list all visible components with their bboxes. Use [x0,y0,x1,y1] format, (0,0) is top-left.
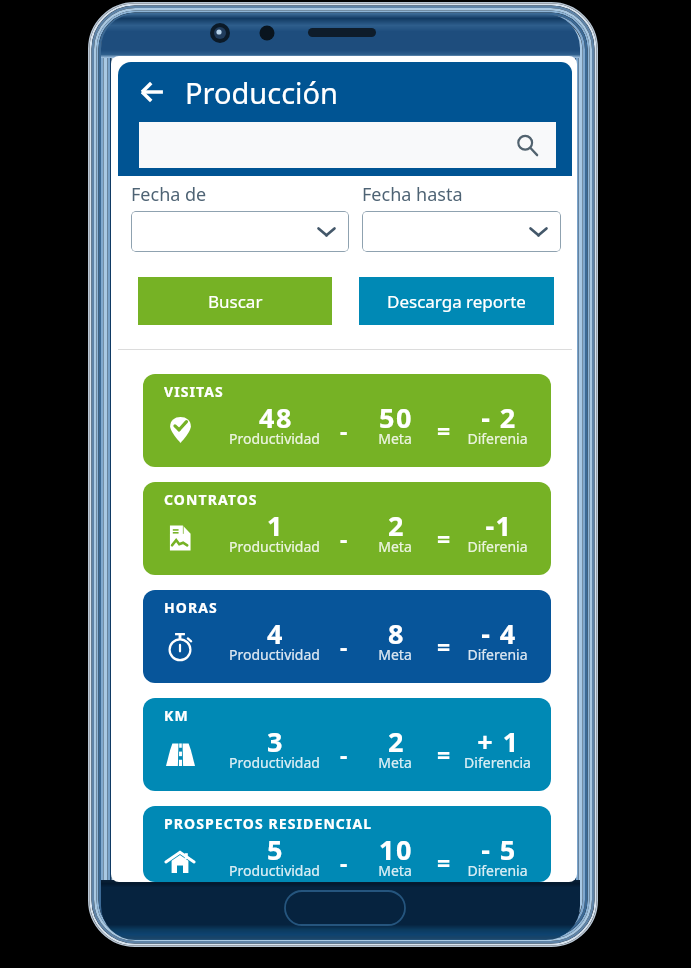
staticText: Productividad [229,429,320,448]
button[interactable]: Fecha hasta [362,211,561,252]
button[interactable]: Descarga reporte [359,277,554,325]
staticText: Diferenia [467,537,528,556]
staticText: = [437,631,451,662]
button[interactable]: Buscar [138,277,332,325]
button[interactable]: Fecha de [131,211,349,252]
staticText: Meta [378,429,412,448]
staticText: -1 [485,507,513,544]
staticText: = [437,523,451,554]
button[interactable]: Search field [139,122,556,168]
staticText: Productividad [229,537,320,556]
staticText: Meta [378,537,412,556]
staticText: 1 [267,507,284,544]
staticText: 2 [388,507,405,544]
staticText: Fecha de [131,182,207,207]
staticText: Productividad [229,861,320,880]
staticText: 48 [259,399,293,436]
button[interactable]: PROSPECTOS RESIDENCIAL [143,806,551,882]
staticText: - 2 [481,399,517,436]
staticText: + 1 [477,723,520,760]
button[interactable]: VISITAS [143,374,551,467]
button[interactable]: Back [131,71,173,113]
staticText: Fecha hasta [362,182,463,207]
button[interactable]: HORAS [143,590,551,683]
button[interactable]: KM [143,698,551,791]
staticText: = [437,415,451,446]
staticText: Diferenia [467,429,528,448]
staticText: HORAS [164,598,218,617]
staticText: = [437,847,451,878]
staticText: Meta [378,753,412,772]
staticText: CONTRATOS [164,490,258,509]
staticText: Producción [185,73,339,112]
staticText: VISITAS [164,382,224,401]
staticText: Descarga reporte [387,290,526,313]
staticText: Buscar [208,290,263,313]
staticText: - 5 [481,831,517,868]
button[interactable]: CONTRATOS [143,482,551,575]
staticText: 10 [379,831,413,868]
staticText: 2 [388,723,405,760]
staticText: 5 [267,831,284,868]
staticText: - [340,631,348,662]
staticText: PROSPECTOS RESIDENCIAL [164,814,373,833]
staticText: 8 [388,615,405,652]
staticText: Diferenia [467,645,528,664]
staticText: Meta [378,645,412,664]
staticText: Productividad [229,645,320,664]
staticText: Meta [378,861,412,880]
staticText: 50 [379,399,413,436]
staticText: 4 [267,615,284,652]
staticText: KM [164,706,189,725]
staticText: - [340,415,348,446]
staticText: - 4 [481,615,517,652]
staticText: - [340,523,348,554]
staticText: Diferenia [467,861,528,880]
staticText: - [340,847,348,878]
staticText: Diferencia [464,753,531,772]
staticText: 3 [267,723,284,760]
staticText: - [340,739,348,770]
staticText: = [437,739,451,770]
staticText: Productividad [229,753,320,772]
